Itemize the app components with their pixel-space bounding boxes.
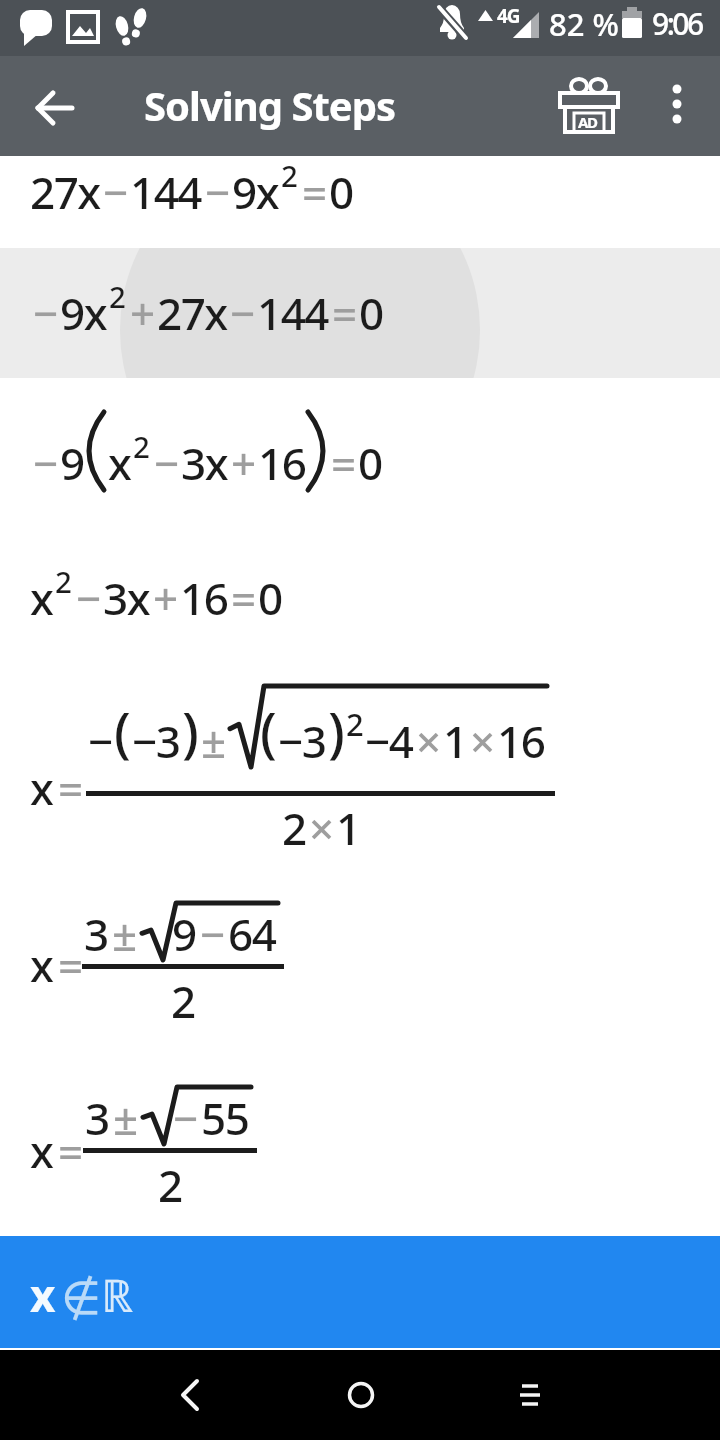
staticText: 2: [109, 276, 125, 316]
staticText: ×: [309, 798, 333, 858]
staticText: ℝ: [101, 1264, 132, 1325]
button[interactable]: x: [0, 1236, 720, 1348]
staticText: −: [154, 433, 178, 493]
staticText: 27x: [30, 162, 100, 222]
staticText: AD: [578, 112, 597, 132]
staticText: 9x: [60, 283, 107, 343]
staticText: =: [58, 758, 82, 818]
staticText: 9:06: [652, 3, 702, 44]
staticText: −3: [132, 711, 180, 771]
staticText: x: [30, 1121, 53, 1181]
staticText: 3x: [181, 433, 228, 493]
staticText: 2: [158, 1155, 182, 1215]
button[interactable]: [500, 1365, 560, 1425]
staticText: +: [231, 433, 255, 493]
staticText: ±: [112, 904, 136, 964]
staticText: −: [88, 711, 112, 771]
staticText: =: [231, 568, 255, 628]
staticText: −: [173, 1088, 197, 1148]
staticText: 3x: [103, 568, 150, 628]
staticText: 16: [258, 433, 306, 493]
staticText: 27x: [157, 283, 227, 343]
staticText: 82 %: [549, 3, 619, 45]
staticText: ×: [416, 711, 440, 771]
staticText: ): [328, 694, 344, 768]
staticText: −3: [278, 711, 326, 771]
staticText: 9x: [232, 162, 279, 222]
staticText: (: [114, 694, 130, 768]
staticText: =: [58, 935, 82, 995]
staticText: x: [30, 935, 53, 995]
staticText: 3: [85, 1088, 109, 1148]
staticText: 55: [201, 1088, 249, 1148]
button[interactable]: AD: [558, 76, 622, 136]
staticText: =: [58, 1121, 82, 1181]
staticText: 2: [171, 971, 195, 1031]
staticText: 144: [130, 162, 202, 222]
staticText: 2: [55, 561, 71, 601]
staticText: x: [30, 568, 53, 628]
button[interactable]: [30, 88, 78, 128]
staticText: −: [205, 162, 229, 222]
staticText: 1: [336, 798, 360, 858]
staticText: 2: [281, 156, 297, 195]
button[interactable]: [331, 1365, 391, 1425]
staticText: 9: [60, 433, 84, 493]
staticText: +: [130, 283, 154, 343]
staticText: ): [182, 694, 198, 768]
staticText: 2: [346, 703, 363, 745]
staticText: −: [33, 283, 57, 343]
staticText: 0: [258, 568, 282, 628]
staticText: 0: [359, 283, 383, 343]
staticText: x: [30, 758, 53, 818]
staticText: 2: [133, 426, 149, 466]
staticText: =: [302, 162, 326, 222]
staticText: ×: [470, 711, 494, 771]
staticText: 64: [228, 904, 276, 964]
staticText: Solving Steps: [144, 78, 396, 132]
staticText: ±: [201, 711, 225, 771]
staticText: −: [103, 162, 127, 222]
staticText: −: [200, 904, 224, 964]
staticText: 4G: [497, 3, 520, 29]
staticText: (: [260, 694, 276, 768]
staticText: x: [30, 1265, 54, 1325]
staticText: 9: [172, 904, 196, 964]
staticText: =: [331, 433, 355, 493]
staticText: 3: [84, 904, 108, 964]
staticText: 1: [443, 711, 467, 771]
staticText: +: [153, 568, 177, 628]
staticText: 16: [497, 711, 545, 771]
staticText: −: [33, 433, 57, 493]
staticText: 0: [358, 433, 382, 493]
button[interactable]: [656, 78, 698, 136]
staticText: ±: [113, 1088, 137, 1148]
staticText: −: [76, 568, 100, 628]
staticText: 2: [282, 798, 306, 858]
staticText: ∉: [61, 1271, 100, 1325]
staticText: −: [230, 283, 254, 343]
staticText: x: [108, 433, 131, 493]
staticText: =: [332, 283, 356, 343]
staticText: −4: [365, 711, 413, 771]
staticText: 0: [329, 162, 353, 222]
staticText: 144: [257, 283, 329, 343]
button[interactable]: [160, 1365, 220, 1425]
staticText: 16: [180, 568, 228, 628]
